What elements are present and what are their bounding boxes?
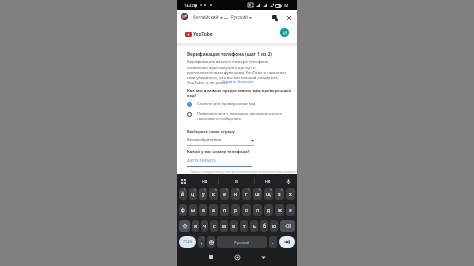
staticText: д [267,207,271,214]
staticText: 1 [184,188,186,192]
button[interactable]: 1 [179,188,187,200]
staticText: ц [191,191,195,198]
staticText: с [213,223,216,230]
staticText: а [212,207,215,214]
staticText: о [245,207,248,214]
staticText: й [181,191,185,198]
staticText: р [234,207,238,214]
staticText: 9 [270,188,272,192]
staticText: 14:42 [184,3,194,8]
button[interactable]: Backspace [280,220,295,232]
button[interactable]: . [269,236,277,248]
staticText: на [202,178,208,184]
staticText: Великобритания [187,137,222,143]
button[interactable]: Enter [279,236,295,248]
button[interactable]: Hide keyboard [255,249,271,265]
button[interactable]: в [199,204,207,216]
staticText: в [202,207,205,214]
staticText: к [212,191,215,198]
staticText: ?123 [183,239,193,245]
button[interactable]: Recents [203,249,219,265]
button[interactable]: и [231,178,242,184]
button[interactable]: ь [250,220,258,232]
button[interactable]: х [286,188,295,200]
button[interactable]: Великобритания [187,137,254,146]
staticText: , [201,239,203,246]
button[interactable]: 447767499419 [187,158,252,167]
button[interactable]: YouTube [185,31,213,38]
button[interactable]: а [209,204,218,216]
button[interactable]: 5 [220,188,229,200]
button[interactable]: и [230,220,238,232]
button[interactable]: э [286,204,295,216]
staticText: 5 [226,188,228,192]
staticText: YouTube [193,31,213,38]
button[interactable]: м [220,220,228,232]
staticText: 447767499419 [187,158,216,164]
button[interactable]: ю [270,220,278,232]
button[interactable]: Русский [231,14,252,20]
staticText: . [272,239,274,245]
button[interactable]: ф [179,204,187,216]
staticText: л [256,207,259,214]
button[interactable]: п [220,204,229,216]
button[interactable]: 2 [189,188,197,200]
button[interactable]: Emoji [207,236,215,248]
button[interactable]: 8 [253,188,262,200]
button[interactable]: Русский [217,236,267,248]
staticText: г [245,191,248,198]
staticText: п [223,207,227,214]
button[interactable]: Английский [193,14,223,20]
staticText: 6 [237,188,239,192]
staticText: у [202,191,205,198]
staticText: 4 [215,188,217,192]
staticText: ы [191,207,195,214]
staticText: Русский [231,14,248,20]
staticText: 2 [194,188,196,192]
staticText: м [222,223,226,230]
staticText: Важно: на один номер телефона можно заре… [191,170,297,174]
staticText: Верификация телефона (шаг 1 из 2) [187,51,272,57]
button[interactable]: я [192,220,199,232]
button[interactable]: л [253,204,262,216]
button[interactable]: ж [275,204,284,216]
button[interactable]: с [210,220,218,232]
button[interactable]: Позвоните мне с помощью автоматического … [187,111,289,121]
staticText: е [223,191,226,198]
staticText: 34 [284,3,289,8]
button[interactable]: Скиньте мне проверочный код [187,101,289,106]
button[interactable]: Home [229,249,245,265]
button[interactable]: Close [283,12,294,23]
button[interactable]: т [240,220,248,232]
button[interactable]: ч [201,220,208,232]
button[interactable]: Узнать больше [223,79,254,85]
button[interactable]: на [199,178,210,184]
staticText: 3 [204,188,206,192]
button[interactable]: б [260,220,268,232]
staticText: 7 [248,188,250,192]
staticText: Какой у вас номер телефона? [187,149,250,155]
button[interactable]: 3 [199,188,207,200]
button[interactable]: о [242,204,251,216]
button[interactable]: Voice input [284,177,292,185]
staticText: не [265,178,271,184]
button[interactable]: 6 [231,188,240,200]
button[interactable]: Clipboard [179,177,187,185]
button[interactable]: ?123 [179,236,196,248]
staticText: щ [266,191,271,198]
button[interactable]: 0 [275,188,284,200]
staticText: т [243,223,246,230]
button[interactable]: р [231,204,240,216]
button[interactable]: 4 [209,188,218,200]
button[interactable]: 9 [264,188,273,200]
button[interactable]: ! [198,236,205,248]
button[interactable]: Shift [179,220,190,232]
button[interactable]: 7 [242,188,251,200]
button[interactable]: не [262,178,273,184]
button[interactable]: д [264,204,273,216]
staticText: я [194,223,197,230]
button[interactable]: Account [280,28,289,37]
button[interactable]: Translate options [269,12,280,23]
staticText: Как мы должны предоставить вам проверочн… [187,88,292,98]
button[interactable]: ы [189,204,197,216]
